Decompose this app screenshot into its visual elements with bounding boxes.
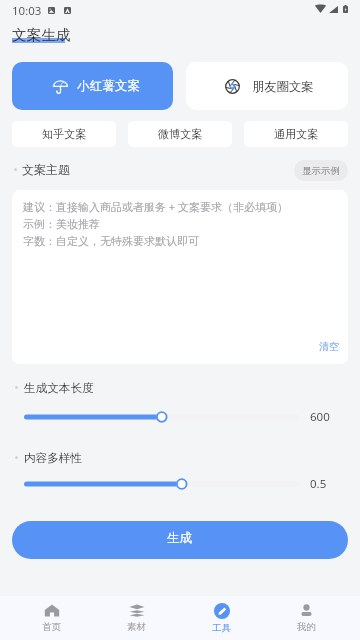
staticText: 文案生成 bbox=[12, 26, 71, 45]
staticText: 首页 bbox=[42, 621, 61, 633]
staticText: 通用文案 bbox=[274, 127, 319, 141]
other: 素材 bbox=[129, 603, 145, 618]
staticText: 我的 bbox=[297, 621, 316, 633]
button[interactable]: 显示示例 bbox=[294, 160, 348, 181]
staticText: 0.5 bbox=[310, 476, 327, 492]
staticText: 显示示例 bbox=[302, 165, 340, 177]
button[interactable]: 素材 bbox=[94, 596, 179, 640]
button[interactable]: 工具 bbox=[179, 596, 264, 640]
button[interactable]: 朋友圈文案 bbox=[186, 62, 348, 110]
staticText: 工具 bbox=[212, 622, 231, 634]
button[interactable]: 小红薯文案 bbox=[12, 62, 173, 110]
staticText: 10:03 bbox=[12, 3, 42, 19]
staticText: 600 bbox=[310, 409, 330, 425]
staticText: 内容多样性 bbox=[24, 451, 82, 466]
button[interactable]: 首页 bbox=[9, 596, 94, 640]
button[interactable]: 我的 bbox=[264, 596, 349, 640]
staticText: 小红薯文案 bbox=[77, 78, 140, 94]
staticText: 生成文本长度 bbox=[24, 381, 94, 396]
staticText: 生成 bbox=[167, 530, 193, 546]
button[interactable]: 通用文案 bbox=[244, 121, 348, 147]
staticText: 清空 bbox=[319, 340, 339, 353]
staticText: 知乎文案 bbox=[42, 127, 87, 141]
other: 工具 bbox=[214, 603, 230, 619]
staticText: 示例：美妆推荐 bbox=[23, 217, 100, 231]
button[interactable]: 生成 bbox=[12, 521, 348, 559]
staticText: 建议：直接输入商品或者服务 + 文案要求（非必填项） bbox=[23, 199, 289, 214]
staticText: 字数：自定义，无特殊要求默认即可 bbox=[23, 234, 199, 248]
staticText: 朋友圈文案 bbox=[252, 79, 314, 94]
button[interactable]: 清空 bbox=[319, 340, 348, 364]
staticText: 素材 bbox=[127, 621, 146, 633]
other: 首页 bbox=[44, 603, 60, 618]
button[interactable]: 知乎文案 bbox=[12, 121, 116, 147]
staticText: 文案主题 bbox=[22, 162, 70, 177]
button[interactable]: 微博文案 bbox=[128, 121, 232, 147]
other: 我的 bbox=[299, 603, 314, 618]
staticText: 微博文案 bbox=[158, 127, 203, 141]
